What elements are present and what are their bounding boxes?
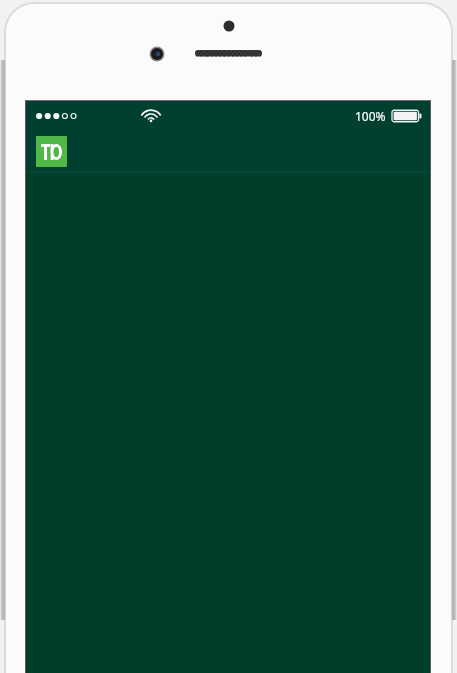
button[interactable]: TD logo, home (36, 136, 67, 167)
staticText: 100% (355, 108, 386, 124)
